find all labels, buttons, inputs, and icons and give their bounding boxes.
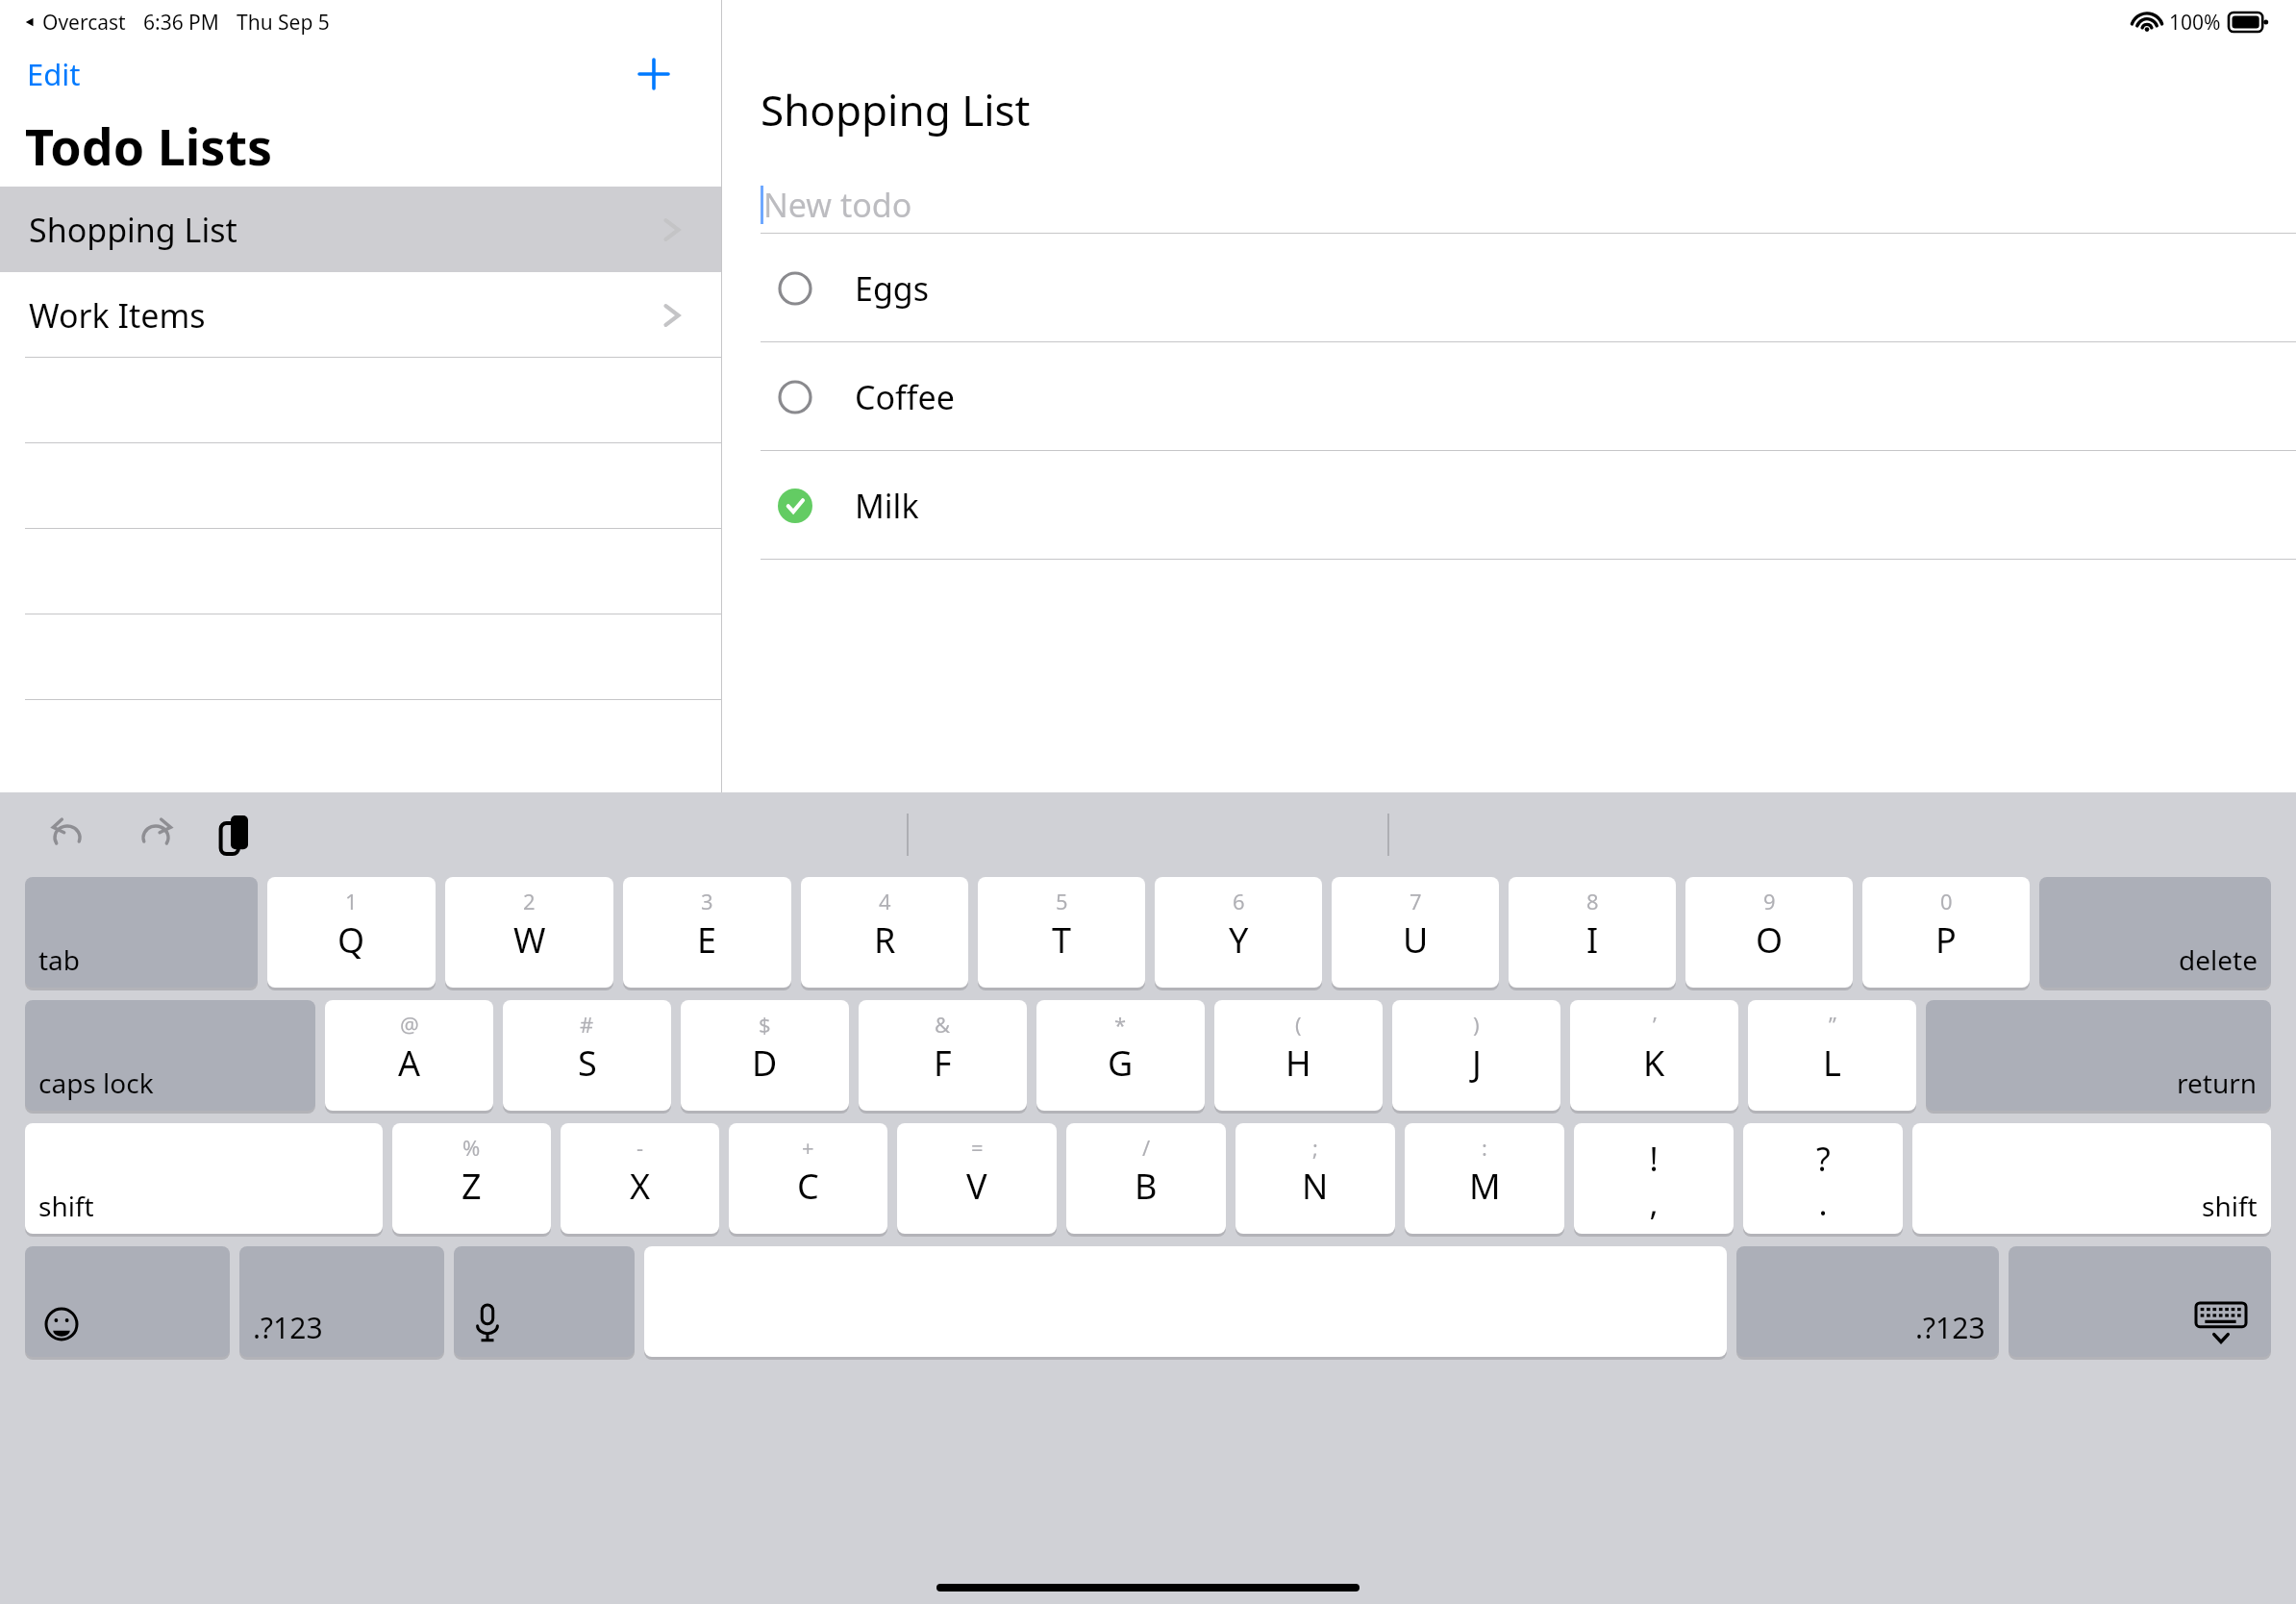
staticText: Overcast [42,9,126,37]
button[interactable]: Edit [23,50,85,98]
button[interactable] [454,1246,635,1357]
staticText: ) [1473,1010,1480,1039]
button[interactable]: .?123 [239,1246,444,1357]
button[interactable] [2009,1246,2271,1357]
button[interactable]: Paste [212,808,265,862]
button[interactable]: / [1066,1123,1226,1234]
staticText: R [874,916,896,964]
button[interactable]: Work Items [0,272,721,358]
staticText: 1 [345,887,358,915]
button[interactable]: @ [325,1000,493,1111]
staticText: K [1643,1040,1665,1087]
button[interactable]: & [859,1000,1027,1111]
staticText: G [1108,1040,1134,1087]
button[interactable]: Eggs [722,234,2296,342]
staticText: 6 [1233,887,1245,915]
button[interactable]: ; [1235,1123,1395,1234]
staticText: return [2177,1065,2258,1101]
staticText: 5 [1056,887,1068,915]
button[interactable]: $ [681,1000,849,1111]
staticText: Edit [27,54,81,94]
staticText: / [1142,1133,1151,1162]
staticText: shift [38,1188,94,1224]
button[interactable]: return [1926,1000,2271,1111]
button[interactable]: Redo [127,808,181,862]
button[interactable]: - [561,1123,719,1234]
button[interactable] [644,1246,1727,1357]
staticText: W [513,916,546,964]
button[interactable]: Add list [629,49,679,99]
staticText: Todo Lists [25,112,273,180]
button[interactable]: * [1036,1000,1205,1111]
staticText: ? [1816,1137,1831,1181]
button[interactable]: ” [1748,1000,1916,1111]
button[interactable]: ’ [1570,1000,1738,1111]
button[interactable]: + [729,1123,887,1234]
staticText: ’ [1653,1010,1657,1039]
button[interactable]: 5 [978,877,1145,988]
staticText: F [934,1040,952,1087]
button[interactable]: # [503,1000,671,1111]
staticText: ; [1312,1133,1318,1162]
staticText: L [1823,1040,1841,1087]
button[interactable]: : [1405,1123,1564,1234]
staticText: $ [759,1010,771,1039]
button[interactable]: 8 [1509,877,1676,988]
staticText: S [578,1040,597,1087]
button[interactable]: Milk [722,451,2296,560]
button[interactable]: ) [1392,1000,1560,1111]
button[interactable]: ? [1743,1123,1903,1234]
button[interactable]: 0 [1862,877,2030,988]
staticText: .?123 [253,1308,323,1347]
button[interactable]: caps lock [25,1000,315,1111]
staticText: H [1285,1040,1311,1087]
staticText: caps lock [38,1065,154,1101]
staticText: - [636,1133,644,1162]
staticText: Shopping List [761,81,1031,138]
button[interactable]: Shopping List [0,187,721,272]
staticText: 3 [701,887,713,915]
button[interactable]: New todo [761,177,2296,233]
button[interactable]: 3 [623,877,791,988]
button[interactable]: ( [1214,1000,1383,1111]
staticText: : [1482,1133,1487,1162]
staticText: M [1469,1163,1501,1210]
button[interactable]: shift [25,1123,383,1234]
staticText: shift [2202,1188,2258,1224]
staticText: N [1302,1163,1329,1210]
button[interactable]: delete [2039,877,2271,988]
staticText: V [966,1163,987,1210]
button[interactable]: 6 [1155,877,1322,988]
staticText: U [1403,916,1429,964]
staticText: C [797,1163,819,1210]
button[interactable]: tab [25,877,258,988]
button[interactable]: 7 [1332,877,1499,988]
staticText: New todo [763,183,912,227]
staticText: . [1818,1181,1828,1220]
button[interactable]: 1 [267,877,436,988]
staticText: 9 [1763,887,1776,915]
button[interactable]: % [392,1123,551,1234]
button[interactable]: .?123 [1736,1246,1999,1357]
button[interactable]: 9 [1685,877,1853,988]
button[interactable]: 4 [801,877,968,988]
staticText: ! [1649,1137,1659,1181]
staticText: # [580,1010,594,1039]
staticText: T [1052,916,1072,964]
button[interactable]: Coffee [722,342,2296,451]
button[interactable]: Undo [42,808,96,862]
staticText: 100% [2169,9,2221,37]
staticText: tab [38,941,81,978]
button[interactable]: = [897,1123,1057,1234]
staticText: Shopping List [29,208,237,252]
staticText: , [1649,1181,1659,1220]
staticText: 4 [879,887,891,915]
staticText: delete [2179,941,2258,978]
button[interactable]: shift [1912,1123,2271,1234]
staticText: Coffee [855,375,955,419]
staticText: Milk [855,484,919,528]
button[interactable]: ! [1574,1123,1734,1234]
staticText: 0 [1940,887,1953,915]
button[interactable] [25,1246,230,1357]
button[interactable]: 2 [445,877,613,988]
